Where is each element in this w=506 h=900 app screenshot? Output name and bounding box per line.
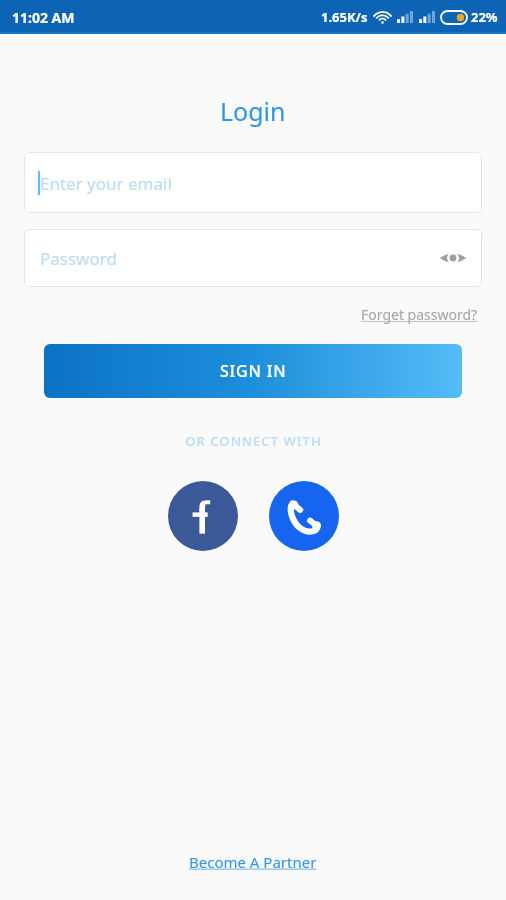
button[interactable]: SIGN IN	[44, 344, 462, 398]
button[interactable]: Forget password?	[357, 301, 482, 328]
staticText: Password	[40, 247, 117, 270]
staticText: 11:02 AM	[12, 8, 75, 27]
button[interactable]: Show password	[436, 241, 470, 275]
staticText: SIGN IN	[220, 360, 287, 382]
button[interactable]: Sign in with Facebook	[168, 481, 238, 551]
staticText: 1.65K/s	[321, 8, 368, 26]
button[interactable]: Sign in with phone	[269, 481, 339, 551]
staticText: Enter your email	[40, 172, 172, 195]
staticText: 22%	[471, 8, 498, 26]
button[interactable]: Password	[24, 229, 482, 287]
staticText: OR CONNECT WITH	[185, 432, 322, 450]
button[interactable]: Become A Partner	[183, 846, 323, 878]
button[interactable]: Enter your email	[24, 152, 482, 213]
staticText: Login	[220, 94, 286, 128]
